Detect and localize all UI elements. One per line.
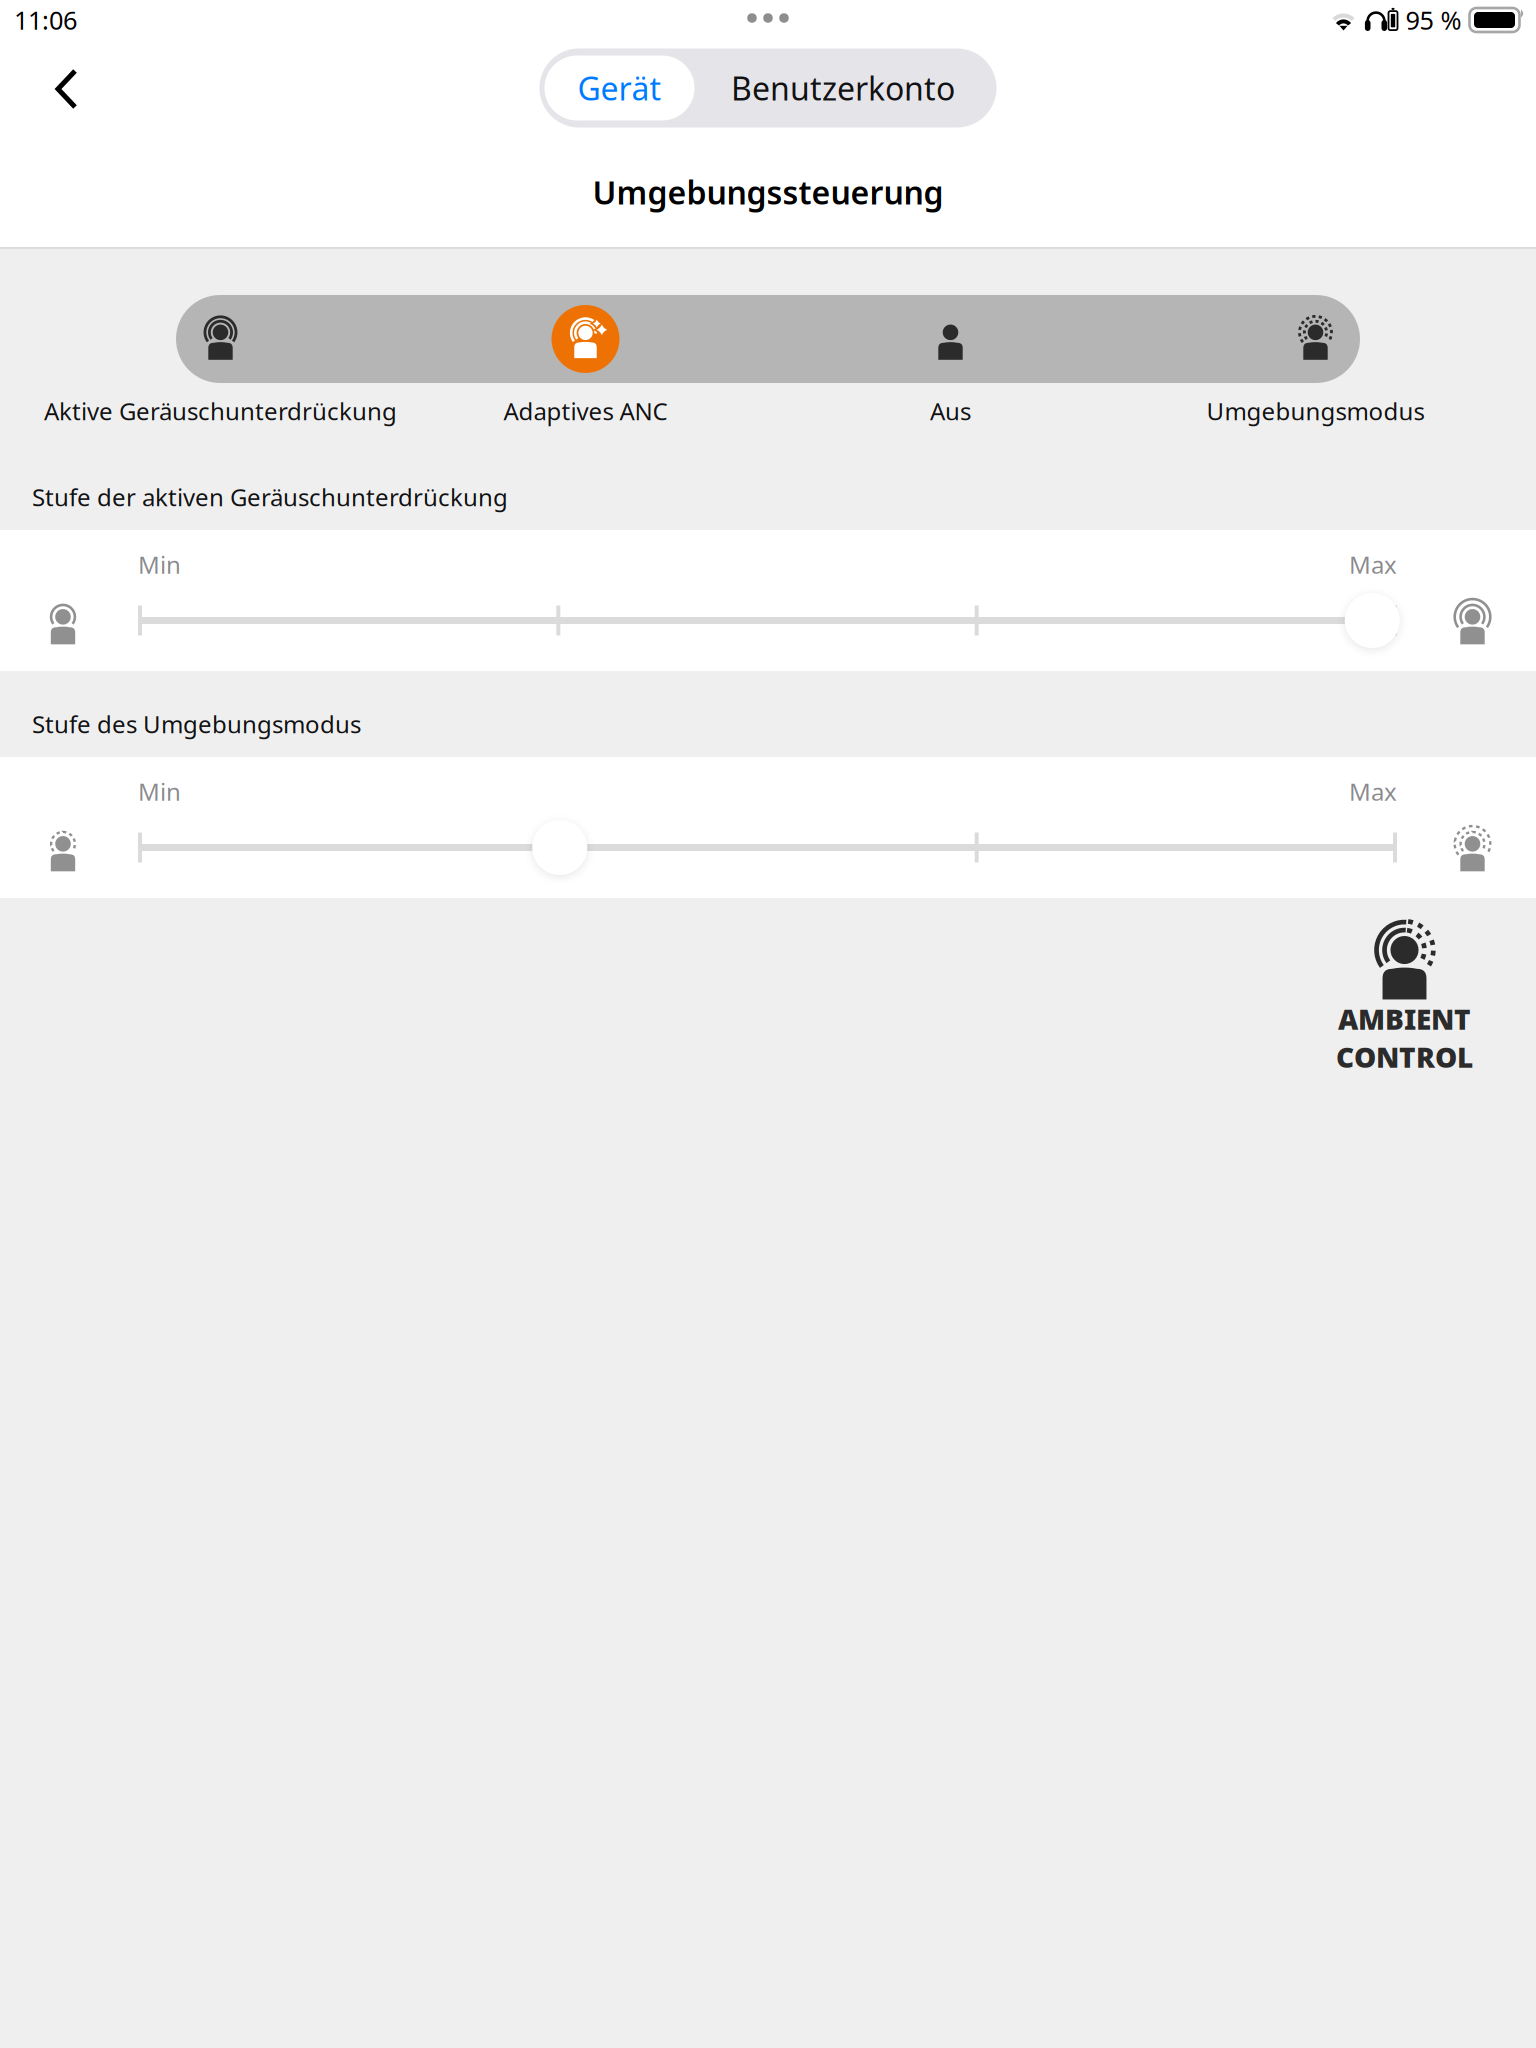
staticText: AMBIENT (1338, 1000, 1471, 1038)
staticText: Aus (930, 395, 971, 427)
staticText: Aktive Geräuschunterdrückung (44, 395, 397, 427)
staticText: Min (138, 776, 181, 807)
button[interactable]: Umgebungsmodus (1133, 295, 1498, 424)
button[interactable]: Adaptives ANC (403, 295, 768, 424)
staticText: Adaptives ANC (503, 395, 667, 427)
staticText: CONTROL (1336, 1038, 1473, 1076)
button[interactable]: Benutzerkonto (694, 55, 991, 120)
staticText: Umgebungsmodus (1206, 395, 1424, 427)
staticText: 95 % (1405, 3, 1461, 37)
staticText: Umgebungssteuerung (592, 171, 943, 213)
button[interactable]: Back (0, 42, 114, 134)
staticText: Stufe der aktiven Geräuschunterdrückung (32, 481, 508, 513)
staticText: Min (138, 549, 181, 580)
button[interactable]: Gerät (544, 55, 694, 120)
staticText: 11:06 (14, 3, 77, 37)
staticText: Gerät (577, 67, 661, 109)
staticText: Max (1349, 549, 1397, 580)
staticText: Benutzerkonto (731, 67, 955, 109)
button[interactable]: Aktive Geräuschunterdrückung (38, 295, 403, 424)
staticText: Stufe des Umgebungsmodus (32, 708, 361, 740)
staticText: Max (1349, 776, 1397, 807)
button[interactable]: Aus (768, 295, 1133, 424)
